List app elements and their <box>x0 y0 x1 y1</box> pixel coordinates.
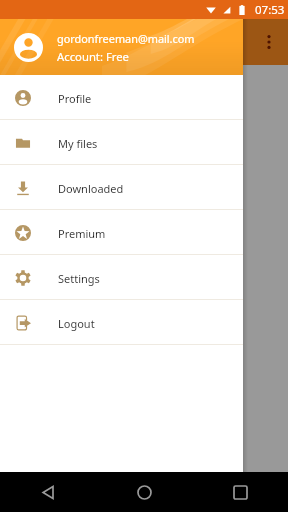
button[interactable]: More options <box>253 22 285 62</box>
button[interactable]: Downloaded <box>0 165 243 210</box>
staticText: Settings <box>58 271 100 286</box>
staticText: My files <box>58 136 98 151</box>
button[interactable]: My files <box>0 120 243 165</box>
button[interactable]: Logout <box>0 300 243 345</box>
button[interactable]: Settings <box>0 255 243 300</box>
staticText: Downloaded <box>58 181 124 196</box>
button[interactable]: Back <box>0 472 96 512</box>
button[interactable]: Home <box>96 472 192 512</box>
staticText: 07:53 <box>255 2 285 18</box>
staticText: gordonfreeman@mail.com <box>57 31 195 46</box>
button[interactable]: Premium <box>0 210 243 255</box>
button[interactable]: Profile <box>0 75 243 120</box>
button[interactable]: Recent apps <box>192 472 288 512</box>
staticText: Logout <box>58 316 95 331</box>
staticText: Profile <box>58 91 92 106</box>
staticText: Premium <box>58 226 106 241</box>
staticText: Account: Free <box>57 49 129 64</box>
